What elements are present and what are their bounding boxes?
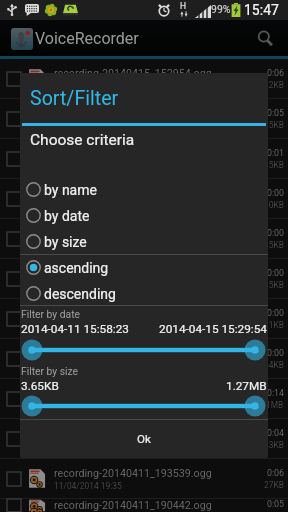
button[interactable]: recording-20140411_202154.ogg bbox=[0, 339, 288, 378]
staticText: 11/04/2014 19:35 bbox=[54, 481, 122, 491]
button[interactable]: by size bbox=[20, 230, 268, 253]
button[interactable]: by name bbox=[20, 178, 268, 201]
staticText: Filter by size bbox=[21, 365, 79, 377]
staticText: VoiceRecorder bbox=[35, 29, 139, 48]
staticText: ascending bbox=[44, 260, 109, 276]
staticText: 0:06 bbox=[267, 68, 284, 78]
staticText: 0:05 bbox=[267, 108, 284, 118]
button[interactable]: recording-20140414_093301.ogg bbox=[0, 139, 288, 178]
staticText: 10KB bbox=[264, 200, 284, 210]
staticText: by size bbox=[44, 234, 87, 250]
staticText: by date bbox=[44, 208, 90, 224]
staticText: 0:14 bbox=[267, 388, 284, 398]
button[interactable]: recording-20140411_190442.ogg bbox=[0, 499, 288, 512]
staticText: recording-20140411_193539.ogg bbox=[54, 467, 212, 480]
staticText: recording-20140413_201132.ogg bbox=[54, 187, 212, 200]
staticText: 27KB bbox=[264, 480, 284, 490]
staticText: 1.27MB bbox=[226, 379, 267, 393]
button[interactable]: recording-20140415_152825.ogg bbox=[0, 99, 288, 138]
staticText: 15KB bbox=[264, 240, 284, 250]
staticText: recording-20140411_190442.ogg bbox=[54, 499, 212, 512]
staticText: 0:00 bbox=[267, 188, 284, 198]
staticText: 64KB bbox=[264, 360, 284, 370]
staticText: Sort/Filter bbox=[30, 87, 119, 110]
button[interactable]: by date bbox=[20, 204, 268, 227]
staticText: 0:00 bbox=[267, 268, 284, 278]
staticText: 0:00 bbox=[267, 348, 284, 358]
button[interactable]: recording-20140411_195442.ogg bbox=[0, 419, 288, 458]
staticText: 0:00 bbox=[267, 308, 284, 318]
staticText: 12/04/2014 11:04 bbox=[54, 281, 122, 291]
staticText: recording-20140411_202154.ogg bbox=[54, 347, 212, 360]
staticText: recording-20140411_200233.ogg bbox=[54, 387, 212, 400]
staticText: 0:06 bbox=[267, 468, 284, 478]
staticText: 22KB bbox=[264, 80, 284, 90]
staticText: 0:00 bbox=[267, 228, 284, 238]
button[interactable]: recording-20140411_200233.ogg bbox=[0, 379, 288, 418]
staticText: 21KB bbox=[264, 320, 284, 330]
staticText: 15:47 bbox=[244, 2, 279, 18]
staticText: 0:01 bbox=[267, 148, 284, 158]
staticText: recording-20140415_152954.ogg bbox=[54, 67, 212, 80]
staticText: H bbox=[180, 1, 187, 11]
staticText: 2014-04-15 15:29:54 bbox=[159, 322, 267, 336]
staticText: 13/04/2014 20:02 bbox=[54, 241, 122, 251]
staticText: recording-20140412_101254.ogg bbox=[54, 307, 212, 320]
staticText: Choose criteria bbox=[30, 131, 135, 149]
staticText: 13/04/2014 20:11 bbox=[54, 201, 122, 211]
staticText: 15KB bbox=[264, 280, 284, 290]
staticText: Filter by date bbox=[21, 308, 80, 320]
staticText: by name bbox=[44, 182, 97, 198]
staticText: 15/04/2014 15:29 bbox=[54, 81, 122, 91]
staticText: 15/04/2014 15:28 bbox=[54, 121, 122, 131]
button[interactable]: recording-20140413_201132.ogg bbox=[0, 179, 288, 218]
button[interactable]: ascending bbox=[20, 256, 268, 279]
staticText: 25KB bbox=[264, 120, 284, 130]
staticText: 2014-04-11 15:58:23 bbox=[21, 322, 129, 336]
staticText: descending bbox=[44, 286, 116, 302]
button[interactable]: recording-20140411_193539.ogg bbox=[0, 459, 288, 498]
staticText: Ok bbox=[137, 432, 151, 446]
staticText: recording-20140412_110433.ogg bbox=[54, 267, 212, 280]
button[interactable]: descending bbox=[20, 282, 268, 305]
staticText: 3.65KB bbox=[21, 379, 59, 393]
button[interactable]: Ok bbox=[20, 420, 268, 458]
staticText: recording-20140413_200201.ogg bbox=[54, 227, 212, 240]
staticText: 1MB bbox=[266, 400, 284, 410]
staticText: recording-20140411_195442.ogg bbox=[54, 427, 212, 440]
button[interactable]: recording-20140413_200201.ogg bbox=[0, 219, 288, 258]
staticText: 11/04/2014 20:02 bbox=[54, 401, 122, 411]
staticText: 0:04 bbox=[267, 428, 284, 438]
button[interactable]: recording-20140412_110433.ogg bbox=[0, 259, 288, 298]
button[interactable]: Search bbox=[249, 22, 281, 54]
staticText: 0:05 bbox=[267, 499, 284, 509]
staticText: 43KB bbox=[264, 440, 284, 450]
staticText: 12/04/2014 10:12 bbox=[54, 321, 122, 331]
staticText: 99% bbox=[211, 3, 231, 15]
staticText: 11/04/2014 20:21 bbox=[54, 361, 122, 371]
button[interactable]: recording-20140415_152954.ogg bbox=[0, 59, 288, 98]
staticText: 15KB bbox=[264, 160, 284, 170]
button[interactable]: recording-20140412_101254.ogg bbox=[0, 299, 288, 338]
